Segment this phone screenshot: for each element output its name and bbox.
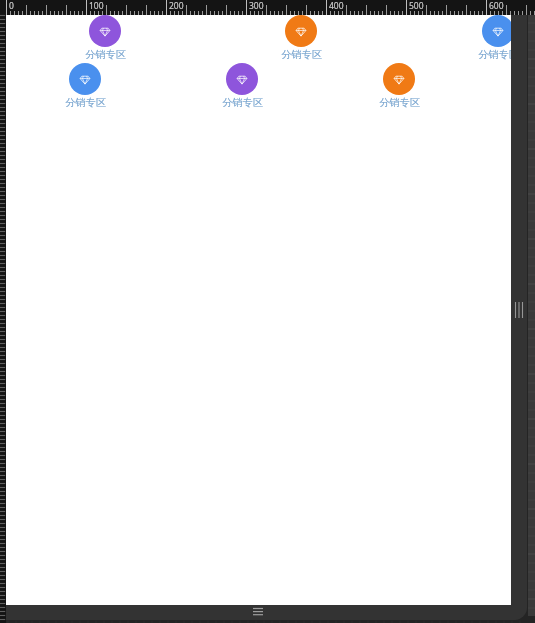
staticText: 600 — [489, 0, 504, 12]
button[interactable]: 分销专区 — [212, 63, 272, 109]
button[interactable] — [511, 15, 527, 605]
staticText: 分销专区 — [222, 96, 263, 109]
staticText: 分销专区 — [379, 96, 420, 109]
button[interactable]: 分销专区 — [75, 15, 135, 61]
staticText: 分销专区 — [85, 48, 126, 61]
staticText: 300 — [249, 0, 264, 12]
staticText: 500 — [409, 0, 424, 12]
staticText: 100 — [89, 0, 104, 12]
staticText: 分销专区 — [478, 48, 511, 61]
staticText: 0 — [9, 0, 14, 12]
button[interactable]: 分销专区 — [271, 15, 331, 61]
staticText: 分销专区 — [281, 48, 322, 61]
button[interactable] — [6, 605, 511, 619]
button[interactable]: 分销专区 — [468, 15, 511, 61]
staticText: 分销专区 — [65, 96, 106, 109]
button[interactable]: 分销专区 — [55, 63, 115, 109]
button[interactable]: 分销专区 — [369, 63, 429, 109]
staticText: 400 — [329, 0, 344, 12]
staticText: 200 — [169, 0, 184, 12]
